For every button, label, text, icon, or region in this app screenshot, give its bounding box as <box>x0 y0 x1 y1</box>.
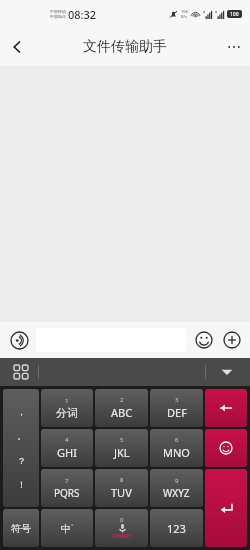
staticText: 08:32 <box>68 7 97 22</box>
staticText: 。 <box>17 430 26 441</box>
staticText: 文件传输助手 <box>83 38 167 56</box>
staticText: CHERRY <box>112 533 132 540</box>
button[interactable]: 9 <box>150 469 203 507</box>
staticText: 8 <box>120 476 124 484</box>
staticText: TUV <box>111 485 132 500</box>
staticText: 2 <box>120 396 124 404</box>
staticText: JKL <box>114 445 130 460</box>
staticText: ABC <box>111 405 133 420</box>
button[interactable]: Emoji <box>192 328 216 352</box>
staticText: 中国移动 <box>50 9 66 14</box>
button[interactable]: 6 <box>150 429 203 467</box>
button[interactable]: 1 <box>41 389 93 427</box>
button[interactable]: Symbols <box>3 509 39 547</box>
staticText: 中 <box>61 522 71 535</box>
button[interactable]: Keyboard menu <box>10 361 32 383</box>
staticText: 3 <box>175 396 179 404</box>
staticText: 分词 <box>56 406 78 420</box>
button[interactable]: 3 <box>150 389 203 427</box>
button[interactable]: More <box>220 328 244 352</box>
button[interactable]: 2 <box>95 389 148 427</box>
staticText: 6 <box>175 436 179 444</box>
staticText: GHI <box>57 445 77 460</box>
staticText: 9 <box>175 477 179 485</box>
staticText: 1 <box>65 397 69 405</box>
staticText: 123 <box>167 521 186 536</box>
button[interactable]: Voice input <box>6 327 32 353</box>
button[interactable]: Backspace <box>205 389 247 427</box>
staticText: ， <box>17 406 26 417</box>
button[interactable]: Back <box>0 28 34 66</box>
staticText: 5 <box>120 436 124 444</box>
button[interactable]: 8 <box>95 469 148 507</box>
staticText: WXYZ <box>163 486 190 500</box>
staticText: PQRS <box>54 486 80 500</box>
staticText: 100 <box>230 11 239 18</box>
staticText: 7 <box>65 477 69 485</box>
button[interactable]: Enter <box>205 469 247 547</box>
button[interactable]: Voice <box>95 509 148 547</box>
button[interactable]: 7 <box>41 469 93 507</box>
button[interactable]: Chinese input <box>41 509 93 547</box>
button[interactable]: 5 <box>95 429 148 467</box>
button[interactable]: 4 <box>41 429 93 467</box>
staticText: MNO <box>163 445 190 460</box>
button[interactable]: Emoji <box>205 429 247 467</box>
button[interactable]: Hide keyboard <box>216 361 238 383</box>
staticText: 符号 <box>11 522 31 535</box>
button[interactable]: More options <box>218 28 250 66</box>
staticText: 168 <box>181 9 188 14</box>
staticText: ° <box>71 522 74 530</box>
staticText: DEF <box>167 405 187 420</box>
staticText: B/s <box>181 14 188 19</box>
button[interactable]: Numbers <box>150 509 203 547</box>
staticText: ？ <box>17 455 26 466</box>
staticText: 中国电信 <box>50 14 66 19</box>
button[interactable]: Punctuation <box>3 389 39 507</box>
staticText: 4 <box>65 436 69 444</box>
staticText: ！ <box>17 479 26 490</box>
staticText: 0 <box>120 516 124 524</box>
